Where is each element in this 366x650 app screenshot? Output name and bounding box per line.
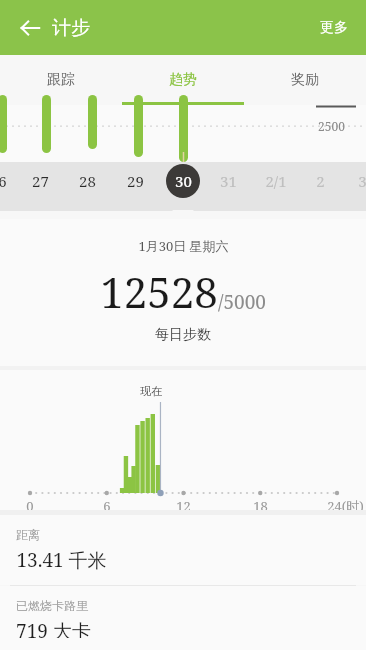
staticText: 趋势: [169, 71, 197, 89]
button[interactable]: 28: [70, 164, 104, 198]
staticText: 13.41 千米: [16, 547, 107, 573]
staticText: 31: [220, 171, 237, 191]
staticText: 更多: [320, 19, 348, 37]
staticText: 2: [316, 171, 325, 191]
staticText: 29: [127, 171, 144, 191]
button[interactable]: 31: [211, 164, 245, 198]
button[interactable]: 2/1: [259, 164, 293, 198]
button[interactable]: 跟踪: [0, 55, 122, 105]
staticText: 跟踪: [47, 71, 75, 89]
button[interactable]: 距离: [0, 515, 366, 585]
staticText: 24(时): [327, 497, 364, 515]
staticText: 计步: [52, 16, 90, 40]
button[interactable]: 趋势: [122, 55, 244, 105]
button[interactable]: 更多: [308, 9, 360, 47]
button[interactable]: 2: [303, 164, 337, 198]
staticText: 12: [176, 497, 191, 515]
staticText: 已燃烧卡路里: [16, 598, 88, 613]
button[interactable]: 3: [345, 164, 366, 198]
staticText: 30: [175, 171, 192, 191]
staticText: 28: [79, 171, 96, 191]
staticText: 27: [32, 171, 49, 191]
button[interactable]: 已燃烧卡路里: [0, 586, 366, 650]
staticText: 奖励: [291, 71, 319, 89]
staticText: 0: [26, 497, 34, 515]
staticText: 2500: [318, 118, 345, 134]
staticText: 每日步数: [155, 326, 211, 344]
staticText: 6: [103, 497, 111, 515]
button[interactable]: 27: [23, 164, 57, 198]
staticText: 距离: [16, 527, 40, 542]
staticText: 现在: [140, 384, 162, 398]
staticText: /5000: [218, 289, 266, 315]
button[interactable]: 29: [118, 164, 152, 198]
button[interactable]: 奖励: [244, 55, 366, 105]
button[interactable]: 30: [166, 164, 200, 198]
staticText: 18: [253, 497, 268, 515]
staticText: 1月30日 星期六: [138, 237, 229, 255]
button[interactable]: Back: [8, 6, 52, 50]
button[interactable]: 6: [0, 164, 19, 198]
staticText: 2/1: [265, 171, 287, 191]
staticText: 12528: [100, 263, 218, 320]
staticText: 3: [358, 171, 366, 191]
staticText: 6: [0, 171, 7, 191]
staticText: 719 大卡: [16, 618, 91, 638]
